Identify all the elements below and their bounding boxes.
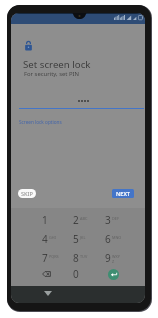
staticText: 6 xyxy=(105,232,111,246)
staticText: DEF xyxy=(112,216,119,221)
button[interactable]: 5 xyxy=(65,230,97,248)
staticText: Screen lock options xyxy=(19,119,62,125)
button[interactable]: 9 xyxy=(97,249,129,267)
button[interactable]: NEXT xyxy=(112,189,134,198)
staticText: 3 xyxy=(105,213,111,227)
button[interactable]: 3 xyxy=(97,211,129,229)
staticText: GHI xyxy=(49,235,56,240)
button[interactable]: 6 xyxy=(97,230,129,248)
staticText: 9 xyxy=(105,251,111,265)
staticText: JKL xyxy=(80,235,86,240)
staticText: 1 xyxy=(42,213,48,227)
button[interactable]: 0 xyxy=(65,265,97,283)
staticText: MNO xyxy=(112,235,122,240)
staticText: 5 xyxy=(73,232,79,246)
button[interactable]: Enter xyxy=(108,269,119,280)
button[interactable]: Screen lock options xyxy=(19,119,62,125)
staticText: 2 xyxy=(73,213,79,227)
button[interactable]: 1 xyxy=(34,211,65,229)
other: Lock xyxy=(25,41,32,51)
button[interactable]: 8 xyxy=(65,249,97,267)
button[interactable]: SKIP xyxy=(18,189,36,198)
staticText: WXYZ xyxy=(112,254,122,264)
staticText: 8 xyxy=(73,251,79,265)
staticText: TUV xyxy=(80,254,88,259)
staticText: For security, set PIN xyxy=(24,70,79,78)
staticText: Set screen lock xyxy=(23,58,91,71)
button[interactable]: 7 xyxy=(34,249,65,267)
staticText: 7 xyxy=(42,251,48,265)
staticText: 0 xyxy=(73,267,79,281)
button[interactable]: 2 xyxy=(65,211,97,229)
staticText: ABC xyxy=(80,216,88,221)
button[interactable]: Hide keyboard xyxy=(41,287,55,299)
staticText: SKIP xyxy=(21,190,34,198)
staticText: NEXT xyxy=(116,190,131,198)
button[interactable]: Backspace xyxy=(34,265,65,283)
button[interactable]: 4 xyxy=(34,230,65,248)
staticText: PQRS xyxy=(49,254,59,259)
staticText: 4 xyxy=(42,232,48,246)
